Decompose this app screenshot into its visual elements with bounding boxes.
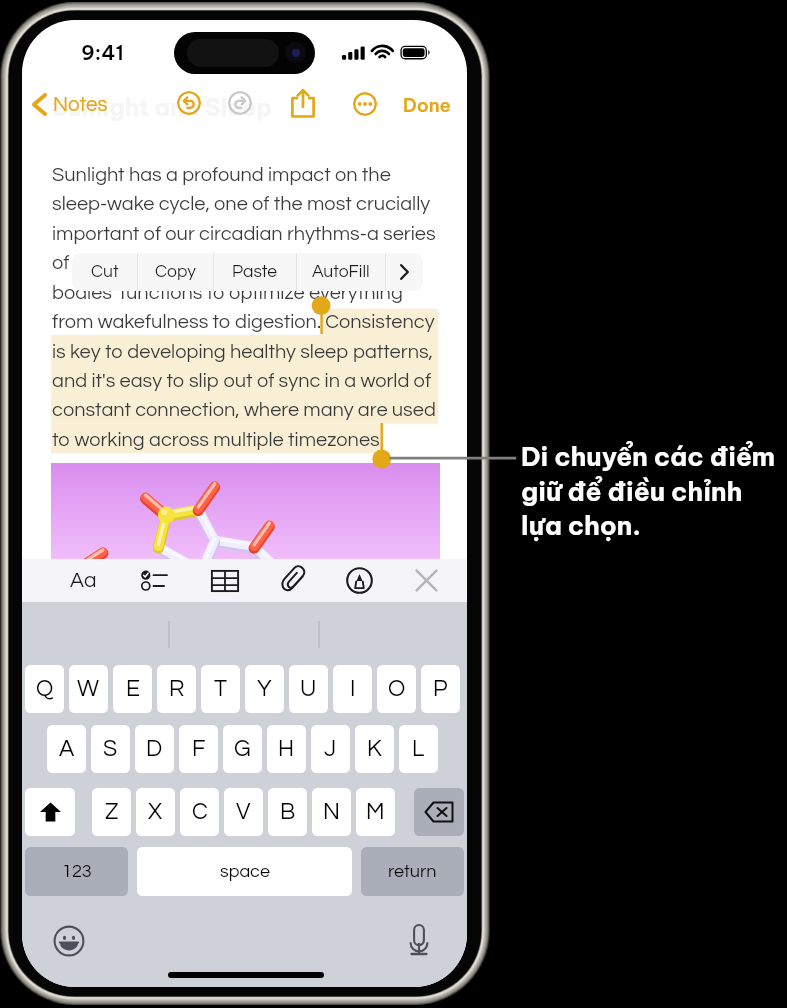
button[interactable]: Table (204, 559, 246, 602)
staticText: bodies' functions to optimize everything (52, 283, 403, 304)
staticText: F (192, 737, 206, 761)
staticText: J (324, 737, 337, 761)
staticText: D (146, 737, 163, 761)
staticText: A (59, 737, 75, 761)
button[interactable]: U (289, 665, 328, 713)
staticText: Cut (91, 263, 119, 281)
staticText: C (192, 800, 208, 824)
staticText: AutoFill (312, 263, 370, 281)
button[interactable]: F (179, 725, 218, 773)
staticText: H (278, 737, 295, 761)
staticText: sleep-wake cycle, one of the most crucia… (52, 194, 431, 215)
staticText: constant connection, where many are used (52, 400, 436, 421)
staticText: important of our circadian rhythms-a ser… (52, 224, 436, 245)
button[interactable]: More options (353, 92, 377, 116)
button[interactable]: M (356, 788, 395, 836)
staticText: M (366, 800, 385, 824)
staticText: space (220, 862, 270, 881)
button[interactable]: AutoFill (297, 253, 385, 291)
staticText: P (433, 677, 448, 701)
button[interactable]: V (224, 788, 263, 836)
button[interactable]: E (113, 665, 152, 713)
button[interactable]: Share (281, 82, 325, 126)
button[interactable]: S (91, 725, 130, 773)
staticText: U (300, 677, 317, 701)
button[interactable]: R (157, 665, 196, 713)
button[interactable]: Done (394, 83, 460, 125)
button[interactable]: H (267, 725, 306, 773)
button[interactable]: Checklist (133, 559, 175, 602)
button[interactable]: N (312, 788, 351, 836)
button[interactable]: Attach file (272, 559, 314, 602)
button[interactable]: P (421, 665, 460, 713)
staticText: 123 (62, 862, 92, 881)
button[interactable]: More (386, 253, 423, 291)
staticText: Paste (232, 263, 278, 281)
staticText: G (234, 737, 251, 761)
staticText: Sunlight has a profound impact on the (52, 165, 391, 186)
button[interactable]: B (268, 788, 307, 836)
button[interactable]: A (47, 725, 86, 773)
staticText: of biological processes that regulate ou… (52, 253, 409, 274)
staticText: Y (257, 677, 272, 701)
button[interactable]: Markup (338, 559, 380, 602)
staticText: Z (105, 800, 119, 824)
button[interactable]: L (399, 725, 438, 773)
button[interactable]: Close toolbar (405, 559, 447, 602)
staticText: from wakefulness to digestion. Consisten… (52, 312, 435, 333)
staticText: Di chuyển các điểm (521, 440, 776, 473)
button[interactable]: return (361, 847, 464, 896)
button[interactable]: 123 (25, 847, 128, 896)
button[interactable]: Undo (177, 91, 201, 115)
staticText: X (148, 800, 163, 824)
staticText: Q (36, 677, 54, 701)
staticText: and it's easy to slip out of sync in a w… (52, 371, 432, 392)
button[interactable]: Notes (27, 82, 116, 126)
staticText: Done (403, 93, 451, 116)
staticText: W (77, 677, 100, 701)
button[interactable]: J (311, 725, 350, 773)
button[interactable]: W (69, 665, 108, 713)
staticText: I (350, 677, 356, 701)
button[interactable]: Emoji keyboard (52, 924, 86, 958)
button[interactable]: O (377, 665, 416, 713)
staticText: T (214, 677, 227, 701)
staticText: B (280, 800, 296, 824)
staticText: L (412, 737, 425, 761)
staticText: lựa chọn. (521, 509, 641, 542)
staticText: Copy (155, 263, 196, 281)
staticText: is key to developing healthy sleep patte… (52, 342, 434, 363)
button[interactable]: Y (245, 665, 284, 713)
staticText: 9:41 (81, 40, 124, 65)
button[interactable]: Cut (72, 253, 137, 291)
button[interactable]: I (333, 665, 372, 713)
button[interactable]: X (136, 788, 175, 836)
staticText: giữ để điều chỉnh (521, 475, 743, 508)
staticText: S (103, 737, 118, 761)
button[interactable]: Redo (228, 91, 252, 115)
button[interactable]: Paste (214, 253, 296, 291)
button[interactable]: Q (25, 665, 64, 713)
button[interactable]: space (137, 847, 352, 896)
button[interactable]: Backspace (414, 788, 464, 836)
staticText: V (236, 800, 251, 824)
button[interactable]: K (355, 725, 394, 773)
button[interactable]: D (135, 725, 174, 773)
staticText: Notes (53, 94, 108, 115)
staticText: return (388, 862, 437, 881)
button[interactable]: Shift (25, 788, 75, 836)
staticText: Aa (70, 570, 97, 592)
button[interactable]: Z (92, 788, 131, 836)
button[interactable]: G (223, 725, 262, 773)
button[interactable]: Dictate (402, 923, 436, 957)
staticText: N (323, 800, 340, 824)
button[interactable]: C (180, 788, 219, 836)
button[interactable]: Text format (62, 559, 104, 602)
staticText: Sunlight and Sleep (52, 92, 272, 122)
button[interactable]: T (201, 665, 240, 713)
staticText: E (126, 677, 140, 701)
staticText: O (388, 677, 406, 701)
staticText: K (367, 737, 382, 761)
staticText: R (169, 677, 185, 701)
button[interactable]: Copy (138, 253, 213, 291)
